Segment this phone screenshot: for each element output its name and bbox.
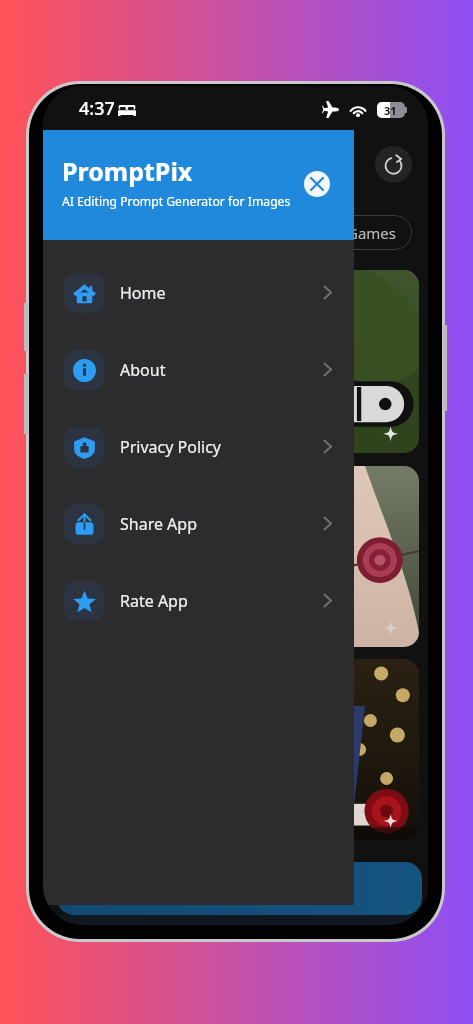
button[interactable]: Privacy Policy [43, 408, 354, 485]
staticText: AI Editing Prompt Generator for Images [62, 193, 291, 210]
staticText: Games [347, 223, 397, 243]
staticText: Privacy Policy [120, 436, 221, 458]
button[interactable]: Rate App [43, 562, 354, 639]
staticText: About [120, 359, 166, 381]
staticText: Share App [120, 513, 198, 535]
staticText: 4:37 [79, 96, 115, 121]
staticText: Home [120, 282, 166, 304]
staticText: PromptPix [62, 154, 193, 188]
button[interactable]: About [43, 331, 354, 408]
button[interactable]: Games [331, 215, 412, 250]
staticText: 31 [384, 103, 397, 118]
staticText: Rate App [120, 590, 188, 612]
button[interactable]: Close drawer [304, 171, 330, 197]
button[interactable]: Refresh [375, 146, 412, 183]
button[interactable] [57, 862, 422, 915]
button[interactable]: Home [43, 254, 354, 331]
button[interactable]: Share App [43, 485, 354, 562]
